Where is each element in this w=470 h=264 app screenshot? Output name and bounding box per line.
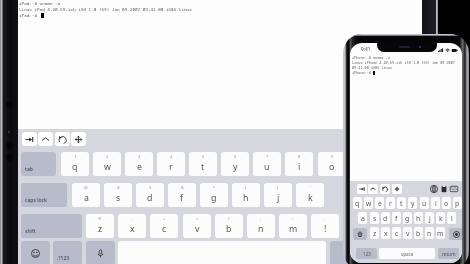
- staticText: a: [84, 192, 89, 204]
- button[interactable]: %: [86, 214, 114, 238]
- button[interactable]: Control: [38, 132, 53, 146]
- button[interactable]: v: [403, 227, 412, 239]
- button[interactable]: Shift: [353, 228, 367, 240]
- button[interactable]: Undo: [380, 184, 390, 194]
- button[interactable]: 5: [189, 152, 217, 176]
- button[interactable]: Dictate: [86, 241, 115, 264]
- button[interactable]: x: [381, 227, 390, 239]
- button[interactable]: 4: [157, 152, 185, 176]
- staticText: t: [201, 161, 205, 173]
- staticText: (: [245, 185, 247, 190]
- button[interactable]: ': [296, 183, 324, 207]
- button[interactable]: Emoji: [21, 241, 50, 264]
- button[interactable]: Settings: [429, 184, 439, 194]
- staticText: $: [149, 185, 152, 190]
- staticText: g: [405, 214, 410, 223]
- button[interactable]: y: [408, 197, 417, 209]
- button[interactable]: 2: [93, 152, 121, 176]
- button[interactable]: 123: [356, 248, 377, 259]
- button[interactable]: z: [370, 227, 379, 239]
- staticText: *: [213, 185, 216, 190]
- button[interactable]: e: [375, 197, 384, 209]
- button[interactable]: :: [279, 214, 307, 238]
- button[interactable]: #: [104, 183, 132, 207]
- button[interactable]: shift: [21, 214, 82, 238]
- staticText: caps lock: [25, 197, 47, 204]
- button[interactable]: Control: [368, 184, 378, 194]
- staticText: Linux iPad 4.20.69-ish iSH 1.0 (69) Jan …: [19, 6, 192, 12]
- button[interactable]: ;: [247, 214, 275, 238]
- button[interactable]: o: [442, 197, 451, 209]
- staticText: y: [233, 161, 238, 173]
- staticText: :: [292, 216, 294, 221]
- button[interactable]: 8: [285, 152, 313, 176]
- button[interactable]: j: [425, 212, 434, 224]
- button[interactable]: h: [414, 212, 423, 224]
- button[interactable]: Delete: [449, 228, 462, 240]
- staticText: l: [451, 214, 453, 223]
- staticText: d: [147, 192, 153, 204]
- button[interactable]: r: [386, 197, 395, 209]
- button[interactable]: Undo: [55, 132, 70, 146]
- button[interactable]: *: [200, 183, 228, 207]
- button[interactable]: &: [168, 183, 196, 207]
- button[interactable]: Keyboard: [449, 184, 459, 194]
- button[interactable]: Tab: [357, 184, 367, 194]
- staticText: s: [373, 214, 377, 223]
- button[interactable]: +: [150, 214, 178, 238]
- button[interactable]: p: [453, 197, 462, 209]
- button[interactable]: i: [431, 197, 440, 209]
- button[interactable]: =: [183, 214, 211, 238]
- button[interactable]: 9: [318, 152, 346, 176]
- button[interactable]: -: [118, 214, 146, 238]
- button[interactable]: Tab: [22, 132, 37, 146]
- button[interactable]: q: [353, 197, 362, 209]
- button[interactable]: ): [264, 183, 292, 207]
- button[interactable]: /: [215, 214, 243, 238]
- button[interactable]: 1: [61, 152, 89, 176]
- button[interactable]: d: [381, 212, 390, 224]
- button[interactable]: ,: [311, 214, 339, 238]
- staticText: g: [211, 192, 217, 204]
- button[interactable]: Paste: [439, 184, 449, 194]
- staticText: o: [329, 161, 335, 173]
- button[interactable]: return: [438, 248, 459, 259]
- button[interactable]: Move: [71, 132, 86, 146]
- staticText: 123: [363, 251, 371, 257]
- staticText: 09:41:00 i686 Linux: [352, 65, 392, 70]
- button[interactable]: s: [370, 212, 379, 224]
- button[interactable]: (: [232, 183, 260, 207]
- button[interactable]: m: [436, 227, 445, 239]
- button[interactable]: caps lock: [21, 183, 67, 207]
- button[interactable]: a: [358, 212, 367, 224]
- staticText: i: [435, 199, 437, 208]
- button[interactable]: w: [364, 197, 373, 209]
- staticText: n: [427, 229, 432, 238]
- button[interactable]: t: [397, 197, 406, 209]
- staticText: /: [228, 216, 230, 221]
- button[interactable]: k: [436, 212, 445, 224]
- button[interactable]: 6: [221, 152, 249, 176]
- button[interactable]: g: [403, 212, 412, 224]
- staticText: 2: [106, 154, 109, 159]
- staticText: %: [98, 216, 102, 221]
- button[interactable]: 3: [125, 152, 153, 176]
- button[interactable]: u: [420, 197, 429, 209]
- staticText: e: [378, 199, 382, 208]
- button[interactable]: Move: [392, 184, 402, 194]
- button[interactable]: Hide keyboard: [330, 241, 359, 264]
- button[interactable]: c: [392, 227, 401, 239]
- button[interactable]: l: [447, 212, 456, 224]
- button[interactable]: b: [414, 227, 423, 239]
- button[interactable]: @: [72, 183, 100, 207]
- button[interactable]: tab: [21, 152, 56, 176]
- button[interactable]: $: [136, 183, 164, 207]
- staticText: r: [389, 199, 392, 208]
- button[interactable]: f: [392, 212, 401, 224]
- button[interactable]: .?123: [53, 241, 82, 264]
- button[interactable]: 7: [253, 152, 281, 176]
- button[interactable]: space: [379, 248, 435, 259]
- button[interactable]: n: [425, 227, 434, 239]
- staticText: iPad:~# uname -a: [19, 0, 61, 6]
